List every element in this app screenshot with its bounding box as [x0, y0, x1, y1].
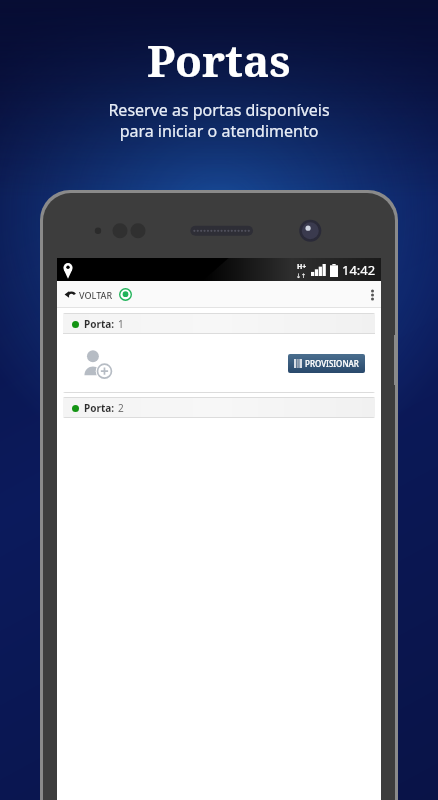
button[interactable]: Adicionar cliente: [80, 346, 114, 380]
staticText: Reserve as portas disponíveis para inici…: [108, 99, 330, 142]
staticText: Portas: [147, 30, 291, 90]
button[interactable]: Mais opções: [363, 281, 381, 308]
button[interactable]: PROVISIONAR: [288, 354, 365, 373]
staticText: Porta:: [84, 317, 115, 331]
staticText: H+: [297, 262, 307, 272]
button[interactable]: Porta:: [63, 313, 375, 393]
other: Notificações: [119, 288, 132, 301]
staticText: ↓↑: [296, 272, 307, 279]
staticText: 2: [118, 401, 124, 415]
staticText: 1: [118, 317, 124, 331]
staticText: Porta:: [84, 401, 115, 415]
button[interactable]: VOLTAR: [62, 285, 134, 304]
staticText: 14:42: [342, 261, 376, 279]
staticText: VOLTAR: [79, 289, 113, 301]
staticText: PROVISIONAR: [305, 358, 359, 369]
button[interactable]: Porta:: [63, 397, 375, 418]
